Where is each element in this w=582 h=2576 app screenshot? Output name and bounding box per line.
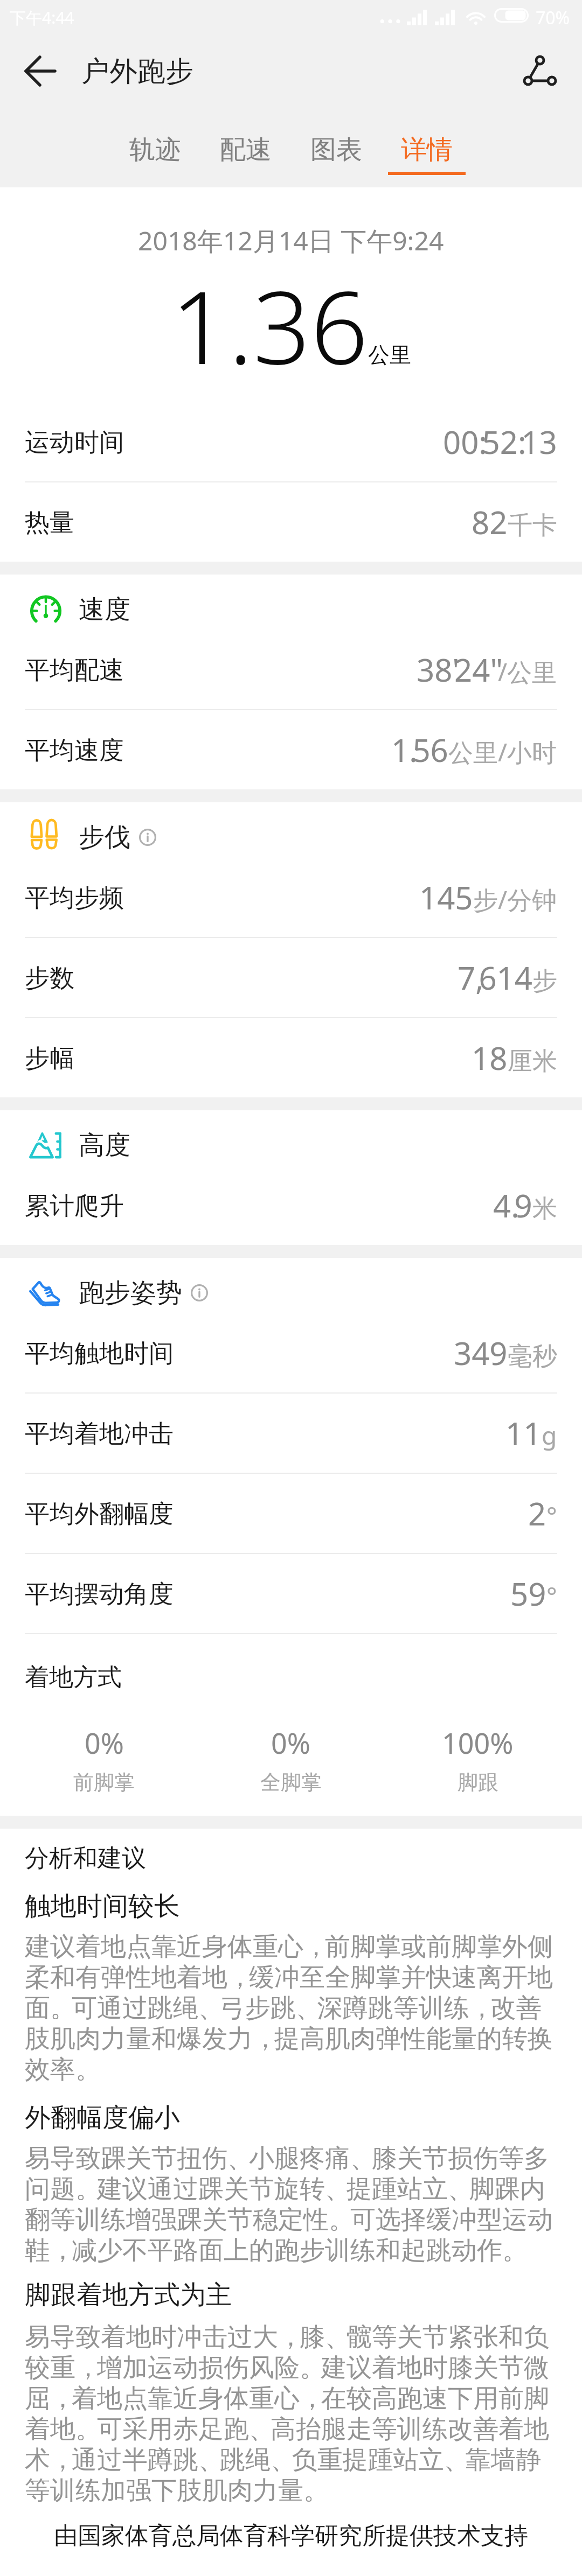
staticText: 349 bbox=[454, 1332, 508, 1374]
staticText: 等训练加强下肢肌肉力量。 bbox=[25, 2475, 325, 2505]
staticText: 厘米 bbox=[508, 1046, 557, 1077]
staticText: 脚跟 bbox=[458, 1769, 498, 1795]
staticText: 平均摆动角度 bbox=[25, 1579, 174, 1610]
staticText: 易导致踝关节扭伤、小腿疼痛、膝关节损伤等多种 bbox=[25, 2143, 557, 2173]
button[interactable]: 平均速度 bbox=[0, 710, 582, 789]
staticText: 鞋，减少不平路面上的跑步训练和起跳动作。 bbox=[25, 2235, 524, 2265]
staticText: 图表 bbox=[310, 134, 362, 166]
staticText: 0% bbox=[271, 1724, 310, 1762]
staticText: 外翻幅度偏小 bbox=[25, 2102, 180, 2134]
staticText: 触地时间较长 bbox=[25, 1890, 180, 1922]
staticText: 下午4:44 bbox=[10, 6, 74, 29]
staticText: /公里 bbox=[498, 655, 557, 689]
staticText: 米 bbox=[532, 1193, 557, 1224]
staticText: 详情 bbox=[401, 134, 453, 166]
button[interactable]: 配速 bbox=[200, 134, 291, 175]
button[interactable]: 平均着地冲击 bbox=[0, 1394, 582, 1473]
staticText: 步 bbox=[532, 965, 557, 997]
staticText: 00:52:13 bbox=[443, 421, 557, 463]
staticText: 着地方式 bbox=[25, 1662, 122, 1693]
button[interactable]: 步幅 bbox=[0, 1018, 582, 1097]
button[interactable]: 轨迹 bbox=[110, 134, 200, 175]
staticText: 步/分钟 bbox=[473, 883, 557, 916]
staticText: 0% bbox=[85, 1724, 124, 1762]
staticText: 较重，增加运动损伤风险。建议着地时膝关节微 bbox=[25, 2352, 549, 2383]
staticText: 59 bbox=[510, 1572, 546, 1615]
staticText: 配速 bbox=[220, 134, 272, 166]
staticText: 速度 bbox=[79, 593, 130, 626]
staticText: ° bbox=[546, 1579, 557, 1613]
button[interactable]: 累计爬升 bbox=[0, 1166, 582, 1245]
staticText: 由国家体育总局体育科学研究所提供技术支持 bbox=[25, 2521, 557, 2551]
staticText: 脚跟着地方式为主 bbox=[25, 2279, 232, 2311]
staticText: 70% bbox=[536, 6, 570, 30]
button[interactable]: 详情 bbox=[382, 134, 472, 175]
staticText: 平均着地冲击 bbox=[25, 1418, 174, 1450]
staticText: 公里/小时 bbox=[448, 735, 557, 769]
staticText: 1.56 bbox=[391, 729, 448, 771]
staticText: 4.9 bbox=[493, 1184, 532, 1227]
staticText: 问题。建议通过踝关节旋转、提踵站立、脚踝内外 bbox=[25, 2173, 557, 2204]
staticText: 千卡 bbox=[508, 510, 557, 541]
staticText: 平均配速 bbox=[25, 655, 124, 686]
staticText: g bbox=[542, 1418, 557, 1452]
staticText: 运动时间 bbox=[25, 427, 124, 458]
staticText: 着地。可采用赤足跑、高抬腿走等训练改善着地技 bbox=[25, 2413, 557, 2444]
button[interactable]: Back bbox=[22, 50, 59, 93]
staticText: 平均步频 bbox=[25, 883, 124, 914]
staticText: 跑步姿势 bbox=[79, 1277, 182, 1309]
staticText: 柔和有弹性地着地，缓冲至全脚掌并快速离开地 bbox=[25, 1962, 553, 1992]
staticText: 分析和建议 bbox=[25, 1843, 146, 1874]
staticText: 平均触地时间 bbox=[25, 1338, 174, 1369]
staticText: 2 bbox=[528, 1492, 546, 1535]
staticText: 步数 bbox=[25, 963, 74, 994]
button[interactable]: 平均步频 bbox=[0, 858, 582, 937]
staticText: 户外跑步 bbox=[81, 54, 193, 89]
staticText: 建议着地点靠近身体重心，前脚掌或前脚掌外侧 bbox=[25, 1931, 553, 1962]
button[interactable]: 热量 bbox=[0, 482, 582, 562]
staticText: ° bbox=[546, 1499, 557, 1532]
staticText: 全脚掌 bbox=[260, 1769, 322, 1795]
staticText: 毫秒 bbox=[508, 1341, 557, 1372]
staticText: 高度 bbox=[79, 1129, 130, 1161]
staticText: 屈，着地点靠近身体重心，在较高跑速下用前脚掌 bbox=[25, 2383, 557, 2413]
staticText: 易导致着地时冲击过大，膝、髋等关节紧张和负荷 bbox=[25, 2321, 557, 2352]
staticText: 轨迹 bbox=[129, 134, 181, 166]
staticText: 38'24" bbox=[417, 648, 498, 691]
button[interactable]: 平均外翻幅度 bbox=[0, 1474, 582, 1553]
staticText: 翻等训练增强踝关节稳定性。可选择缓冲型运动 bbox=[25, 2204, 553, 2235]
button[interactable]: 运动时间 bbox=[0, 402, 582, 481]
staticText: 累计爬升 bbox=[25, 1191, 124, 1222]
staticText: 前脚掌 bbox=[73, 1769, 135, 1795]
staticText: 术，通过半蹲跳、跳绳、负重提踵站立、靠墙静蹲 bbox=[25, 2444, 557, 2475]
staticText: 步伐 bbox=[79, 821, 130, 853]
staticText: 100% bbox=[442, 1724, 514, 1762]
staticText: 平均外翻幅度 bbox=[25, 1499, 174, 1530]
staticText: 18 bbox=[472, 1037, 508, 1079]
staticText: 面。可通过跳绳、弓步跳、深蹲跳等训练，改善下 bbox=[25, 1992, 557, 2023]
button[interactable]: 图表 bbox=[291, 134, 382, 175]
staticText: 1.36 bbox=[171, 256, 368, 394]
staticText: 热量 bbox=[25, 507, 74, 538]
button[interactable]: 平均触地时间 bbox=[0, 1313, 582, 1392]
button[interactable]: 平均摆动角度 bbox=[0, 1554, 582, 1633]
staticText: 公里 bbox=[368, 341, 411, 368]
staticText: 7,614 bbox=[458, 956, 532, 999]
staticText: 肢肌肉力量和爆发力，提高肌肉弹性能量的转换 bbox=[25, 2023, 553, 2054]
staticText: 82 bbox=[472, 501, 508, 543]
staticText: 2018年12月14日 下午9:24 bbox=[138, 223, 444, 258]
staticText: 11 bbox=[505, 1412, 542, 1454]
button[interactable]: 步数 bbox=[0, 938, 582, 1017]
staticText: 平均速度 bbox=[25, 735, 124, 766]
staticText: 步幅 bbox=[25, 1043, 74, 1074]
button[interactable]: 平均配速 bbox=[0, 630, 582, 709]
button[interactable]: Share bbox=[517, 49, 563, 93]
staticText: 效率。 bbox=[25, 2054, 97, 2084]
staticText: 145 bbox=[419, 876, 473, 919]
